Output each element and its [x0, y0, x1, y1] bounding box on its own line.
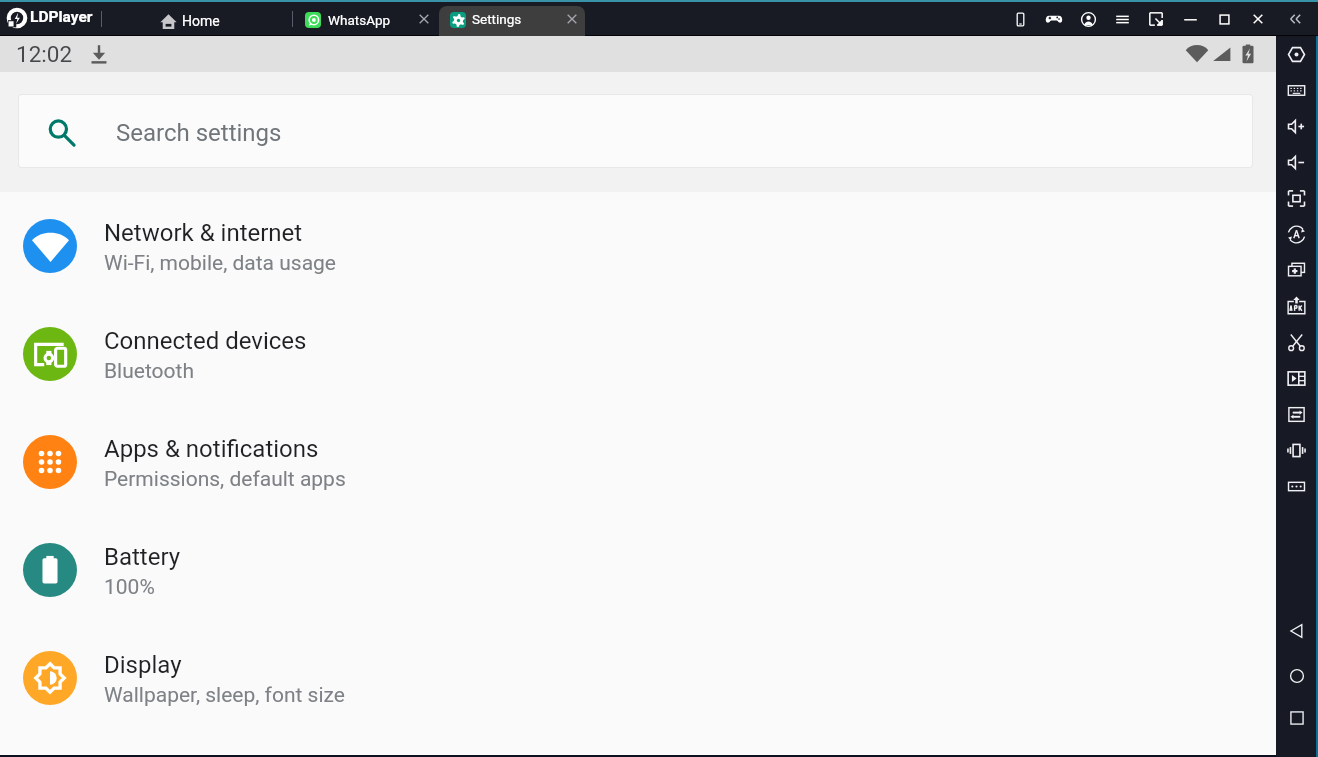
- staticText: Wi-Fi, mobile, data usage: [104, 251, 337, 276]
- button[interactable]: Home: [1276, 658, 1317, 694]
- staticText: Search settings: [116, 119, 282, 147]
- button[interactable]: Volume down: [1276, 144, 1317, 180]
- staticText: 100%: [104, 575, 155, 600]
- staticText: Wallpaper, sleep, font size: [104, 683, 345, 708]
- button[interactable]: Synchronizer: [1276, 396, 1317, 432]
- button[interactable]: Settings: [439, 6, 585, 36]
- button[interactable]: Maximize: [1207, 3, 1241, 35]
- button[interactable]: Phone: [1003, 3, 1037, 35]
- staticText: Bluetooth: [104, 359, 194, 384]
- button[interactable]: Account: [1071, 3, 1105, 35]
- staticText: LDPlayer: [30, 8, 93, 26]
- button[interactable]: Auto rotate: [1276, 216, 1317, 252]
- staticText: Home: [182, 13, 220, 29]
- button[interactable]: Battery: [0, 516, 1276, 624]
- button[interactable]: Apps & notifications: [0, 408, 1276, 516]
- button[interactable]: Home: [150, 3, 230, 35]
- button[interactable]: Screenshot: [1276, 324, 1317, 360]
- button[interactable]: Close: [1241, 3, 1275, 35]
- button[interactable]: Keyboard: [1276, 72, 1317, 108]
- button[interactable]: Close WhatsApp tab: [414, 9, 434, 29]
- button[interactable]: Full screen: [1276, 180, 1317, 216]
- button[interactable]: Recent apps: [1276, 700, 1317, 736]
- staticText: 12:02: [16, 41, 73, 67]
- staticText: Battery: [104, 543, 181, 571]
- button[interactable]: Record screen: [1276, 360, 1317, 396]
- button[interactable]: Network & internet: [0, 192, 1276, 300]
- staticText: Settings: [472, 11, 522, 27]
- button[interactable]: Location: [1276, 36, 1317, 72]
- button[interactable]: Display: [0, 624, 1276, 732]
- button[interactable]: WhatsApp: [297, 3, 437, 35]
- staticText: Permissions, default apps: [104, 467, 346, 492]
- button[interactable]: Menu: [1105, 3, 1139, 35]
- button[interactable]: Close Settings tab: [562, 9, 582, 29]
- staticText: Connected devices: [104, 327, 307, 355]
- button[interactable]: More: [1276, 468, 1317, 504]
- staticText: Network & internet: [104, 219, 303, 247]
- button[interactable]: Shake: [1276, 432, 1317, 468]
- button[interactable]: Search settings: [19, 95, 1252, 167]
- button[interactable]: Back: [1276, 613, 1317, 649]
- button[interactable]: Collapse sidebar: [1280, 2, 1314, 36]
- staticText: Apps & notifications: [104, 435, 319, 463]
- button[interactable]: New window: [1276, 252, 1317, 288]
- button[interactable]: Install APK: [1276, 288, 1317, 324]
- staticText: Display: [104, 651, 182, 679]
- button[interactable]: Minimize: [1173, 3, 1207, 35]
- button[interactable]: Volume up: [1276, 108, 1317, 144]
- button[interactable]: Game controller: [1037, 3, 1071, 35]
- button[interactable]: Resize window: [1139, 3, 1173, 35]
- staticText: WhatsApp: [328, 12, 391, 28]
- button[interactable]: Connected devices: [0, 300, 1276, 408]
